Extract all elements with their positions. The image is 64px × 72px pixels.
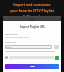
staticText: ADD xyxy=(30,65,35,68)
staticText: Import and customize xyxy=(13,2,51,7)
staticText: Import Playlist URL xyxy=(20,25,45,29)
staticText: your favorite IPTV Playlist xyxy=(10,8,54,13)
button[interactable]: Playlist file xyxy=(5,55,59,60)
button[interactable]: ADD xyxy=(5,64,59,69)
staticText: Playlist URL xyxy=(5,41,16,44)
other: Playlist file xyxy=(5,56,8,59)
button[interactable]: Active xyxy=(55,56,59,60)
staticText: & Channels xyxy=(23,14,42,16)
button[interactable]: http:// xyxy=(5,45,52,49)
staticText: Playlist name xyxy=(5,33,18,36)
staticText: http:// xyxy=(6,46,12,49)
